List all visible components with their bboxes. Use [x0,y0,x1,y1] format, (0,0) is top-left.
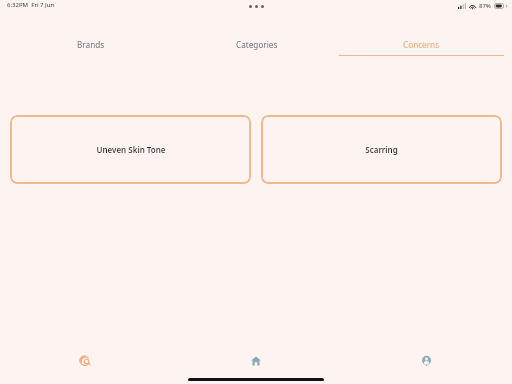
staticText: Categories [236,39,278,50]
button[interactable]: Profile [341,346,512,376]
staticText: Scarring [365,144,398,155]
button[interactable]: Brands [8,0,174,56]
button[interactable]: Concerns [339,0,504,56]
staticText: Brands [77,39,105,50]
staticText: 87% [479,2,491,10]
button[interactable]: Skin scan [0,346,170,376]
staticText: Uneven Skin Tone [96,144,166,155]
staticText: 6:32PM Fri 7 Jun [7,1,55,9]
staticText: Concerns [403,39,440,50]
button[interactable]: Home [170,346,341,376]
button[interactable]: Categories [174,0,339,56]
button[interactable]: Scarring [261,115,502,184]
button[interactable]: Uneven Skin Tone [10,115,251,184]
